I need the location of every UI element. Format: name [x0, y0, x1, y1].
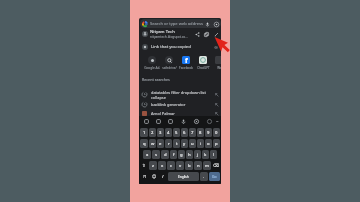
- button[interactable]: Search or type web address: [140, 19, 221, 28]
- button[interactable]: e: [157, 139, 164, 148]
- button[interactable]: backlink generator: [142, 100, 219, 109]
- button[interactable]: ?1: [140, 172, 149, 181]
- button[interactable]: z: [149, 161, 157, 170]
- button[interactable]: v: [176, 161, 184, 170]
- button[interactable]: Go: [209, 172, 220, 181]
- staticText: e: [159, 141, 162, 147]
- button[interactable]: datatables filter dropdown list collapse: [142, 87, 219, 102]
- button[interactable]: Insert search: [214, 102, 219, 107]
- button[interactable]: 9: [205, 128, 212, 137]
- button[interactable]: w: [149, 139, 156, 148]
- other: Cursor: [0, 0, 360, 202]
- button[interactable]: 1: [140, 128, 148, 137]
- button[interactable]: GIF: [164, 116, 177, 127]
- staticText: g: [180, 152, 183, 158]
- button[interactable]: m: [203, 161, 211, 170]
- button[interactable]: f: [170, 150, 177, 159]
- button[interactable]: Wo: [212, 54, 221, 70]
- button[interactable]: Share: [195, 32, 200, 37]
- staticText: ∞: [214, 44, 219, 49]
- button[interactable]: a: [143, 150, 151, 159]
- staticText: 4: [167, 130, 170, 136]
- staticText: Recent searches: [142, 77, 170, 82]
- staticText: Wo: [217, 66, 221, 70]
- button[interactable]: Voice typing: [177, 116, 190, 127]
- button[interactable]: .: [200, 172, 208, 181]
- button[interactable]: ☺: [150, 172, 158, 181]
- button[interactable]: b: [185, 161, 193, 170]
- button[interactable]: u: [189, 139, 196, 148]
- button[interactable]: English: [168, 172, 199, 181]
- button[interactable]: k: [202, 150, 209, 159]
- staticText: Google Ad...: [144, 66, 160, 70]
- button[interactable]: j: [194, 150, 201, 159]
- staticText: p: [215, 141, 218, 147]
- button[interactable]: Copy: [204, 32, 209, 37]
- button[interactable]: Settings: [190, 116, 203, 127]
- staticText: ?1: [143, 174, 147, 179]
- button[interactable]: y: [181, 139, 188, 148]
- button[interactable]: Sticker: [152, 116, 164, 127]
- button[interactable]: h: [186, 150, 193, 159]
- button[interactable]: ⌫: [212, 161, 220, 170]
- button[interactable]: o: [205, 139, 212, 148]
- staticText: w: [151, 141, 155, 147]
- staticText: b: [188, 163, 191, 169]
- staticText: 8: [199, 130, 202, 136]
- button[interactable]: f: [178, 54, 194, 70]
- button[interactable]: 4: [165, 128, 172, 137]
- button[interactable]: /: [159, 172, 167, 181]
- button[interactable]: d: [161, 150, 169, 159]
- button[interactable]: n: [194, 161, 202, 170]
- button[interactable]: Arnol Palmar: [142, 109, 219, 118]
- staticText: Link that you copied: [151, 44, 214, 50]
- staticText: ⇧: [142, 163, 146, 168]
- button[interactable]: s: [152, 150, 160, 159]
- staticText: 1: [143, 130, 146, 136]
- button[interactable]: Open copied link: [214, 44, 219, 49]
- button[interactable]: Nityam Tech: [142, 28, 219, 40]
- staticText: Search or type web address: [150, 21, 205, 27]
- button[interactable]: t: [173, 139, 180, 148]
- button[interactable]: q: [140, 139, 148, 148]
- button[interactable]: Insert search: [214, 92, 219, 97]
- button[interactable]: 5: [173, 128, 180, 137]
- button[interactable]: Voice search: [205, 22, 210, 27]
- staticText: u: [191, 141, 194, 147]
- button[interactable]: 6: [181, 128, 188, 137]
- button[interactable]: Clipboard: [140, 116, 152, 127]
- button[interactable]: ⇧: [140, 161, 148, 170]
- staticText: o: [207, 141, 210, 147]
- staticText: n: [197, 163, 200, 169]
- button[interactable]: g: [178, 150, 185, 159]
- button[interactable]: r: [165, 139, 172, 148]
- button[interactable]: Google Lens: [214, 22, 219, 27]
- button[interactable]: 3: [157, 128, 164, 137]
- button[interactable]: 7: [189, 128, 196, 137]
- button[interactable]: p: [213, 139, 220, 148]
- button[interactable]: 8: [197, 128, 204, 137]
- button[interactable]: Google Ad...: [144, 54, 160, 70]
- button[interactable]: safedrive/: [161, 54, 177, 70]
- button[interactable]: 0: [213, 128, 220, 137]
- staticText: safedrive/: [162, 66, 177, 70]
- button[interactable]: ChatGPT: [195, 54, 211, 70]
- staticText: i: [200, 141, 202, 147]
- button[interactable]: 2: [149, 128, 156, 137]
- staticText: 0: [215, 130, 218, 136]
- staticText: l: [213, 152, 215, 158]
- button[interactable]: i: [197, 139, 204, 148]
- button[interactable]: c: [167, 161, 175, 170]
- staticText: k: [204, 152, 207, 158]
- staticText: 7: [191, 130, 194, 136]
- staticText: Arnol Palmar: [151, 111, 214, 116]
- button[interactable]: x: [158, 161, 166, 170]
- staticText: d: [164, 152, 167, 158]
- button[interactable]: Edit: [214, 32, 219, 37]
- button[interactable]: l: [210, 150, 217, 159]
- button[interactable]: Insert search: [214, 111, 219, 116]
- staticText: 2: [151, 130, 154, 136]
- button[interactable]: More: [203, 116, 216, 127]
- button[interactable]: Link that you copied: [142, 41, 219, 52]
- staticText: v: [179, 163, 182, 169]
